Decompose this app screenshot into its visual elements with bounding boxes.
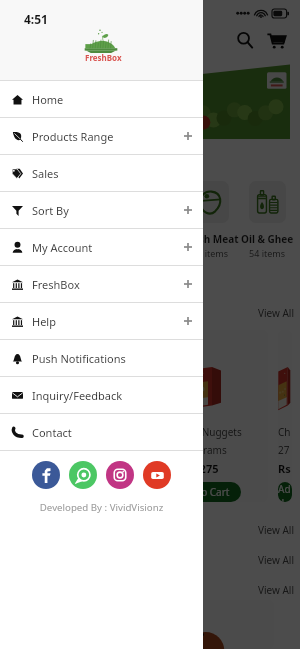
staticText: Add To Cart [32,485,87,499]
button[interactable]: Cart [265,29,287,51]
staticText: Push Notifications [32,351,126,366]
button[interactable]: Add To Cart [163,482,241,502]
button[interactable] [78,181,115,223]
button[interactable]: Help [0,303,203,339]
button[interactable]: Add To Cart [20,482,98,502]
staticText: 270 Grams [33,443,84,457]
staticText: My Account [32,240,93,255]
button[interactable]: Chicken Nuggets [278,330,292,502]
staticText: Rs 275 [41,461,76,476]
staticText: 270 Grams [176,443,227,457]
button[interactable]: Add To Cart [278,482,292,502]
button[interactable]: Inquiry/Feedback [0,377,203,413]
staticText: 48 items [21,247,58,259]
button[interactable]: Push Notifications [0,340,203,376]
staticText: Fruits [82,232,111,246]
staticText: Products Range [32,129,114,144]
button[interactable] [249,181,286,223]
staticText: Chicken Nuggets [278,425,292,439]
staticText: Contact [32,425,72,440]
button[interactable]: Instagram [106,461,134,489]
staticText: Sales [32,166,59,181]
staticText: Sort By [32,203,69,218]
staticText: Chicken Nuggets [162,425,242,439]
staticText: View All [258,523,295,537]
staticText: FreshBox [85,52,122,63]
button[interactable]: Contact [0,414,203,450]
button[interactable]: YouTube [143,461,171,489]
button[interactable]: View All [258,583,295,597]
button[interactable]: View All [258,553,295,567]
button[interactable]: FreshBox [0,266,203,302]
button[interactable]: Sales [0,155,203,191]
staticText: Help [32,314,56,329]
staticText: Chicken Nuggets [19,425,99,439]
staticText: Rs 275 [278,461,292,476]
button[interactable] [21,181,58,223]
staticText: Inquiry/Feedback [32,388,123,403]
staticText: View All [258,583,295,597]
staticText: 270 Grams [278,443,292,457]
button[interactable]: Facebook [32,461,60,489]
staticText: Home [32,92,64,107]
button[interactable] [192,181,229,223]
button[interactable]: Products Range [0,118,203,154]
button[interactable]: Home [0,81,203,117]
button[interactable]: Chicken Nuggets [135,330,268,502]
staticText: 4:51 [24,11,48,27]
button[interactable]: View All [258,523,295,537]
staticText: 54 items [249,247,286,259]
button[interactable]: Search [234,29,256,51]
button[interactable]: My Account [0,229,203,265]
button[interactable]: Chicken Nuggets [0,330,125,502]
staticText: Rs 275 [184,461,219,476]
staticText: View All [258,553,295,567]
staticText: FreshBox [32,277,80,292]
staticText: Fresh Meat [183,232,239,246]
button[interactable]: WhatsApp [69,461,97,489]
staticText: Oil & Ghee [241,232,294,246]
staticText: Add To Cart [175,485,230,499]
staticText: 35 items [192,247,229,259]
button[interactable]: Sort By [0,192,203,228]
staticText: Add To Cart [278,482,292,502]
button[interactable]: View All [258,306,295,320]
staticText: Developed By : VividVisionz [0,501,203,514]
staticText: 31 items [78,247,115,259]
staticText: View All [258,306,295,320]
button[interactable] [135,181,172,223]
staticText: Vegetables [12,232,68,246]
